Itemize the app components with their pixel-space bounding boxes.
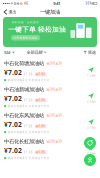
staticText: ¥7.88: [24, 99, 33, 102]
staticText: 1.2km: [87, 74, 95, 77]
staticText: ¥7.02: [4, 94, 22, 103]
staticText: 9:41: [53, 1, 60, 6]
staticText: 中石化长虹加油站: [4, 138, 44, 145]
staticText: 省0.86: [35, 98, 45, 102]
staticText: 立即查看附近油站: [14, 36, 38, 39]
staticText: 省0.86: [35, 72, 45, 76]
staticText: 全部品牌: [27, 50, 43, 55]
button[interactable]: 退出: [0, 7, 19, 17]
staticText: ¥7.88: [24, 151, 33, 154]
staticText: 3.1km: [87, 126, 95, 129]
button[interactable]: 中石化荷塘加油站: [0, 58, 100, 84]
staticText: 4G: [24, 2, 28, 5]
staticText: ¥7.88: [24, 125, 33, 128]
staticText: 满200减30: [46, 140, 62, 143]
staticText: 一键加油: [40, 9, 60, 15]
button[interactable]: 筛选: [83, 48, 96, 57]
staticText: 一键下单 轻松加油: [8, 25, 66, 34]
button[interactable]: 中石化东风加油站: [0, 110, 100, 136]
staticText: 2.6km: [87, 100, 95, 103]
staticText: 中国移动: [11, 2, 23, 5]
staticText: 最高可优惠4元·支持加油卡支付: [7, 130, 49, 134]
staticText: 满200减30: [46, 88, 62, 91]
staticText: 筛选: [88, 50, 96, 55]
button[interactable]: Refresh nearby stations: [84, 137, 96, 151]
staticText: 最高可优惠4元·支持加油卡支付: [7, 78, 49, 82]
staticText: 满200减30: [46, 62, 62, 65]
staticText: 退出: [8, 9, 16, 14]
staticText: 4.8km: [87, 152, 95, 155]
staticText: ¥7.02: [4, 68, 22, 77]
staticText: 最高可优惠4元·支持加油卡支付: [7, 104, 49, 108]
staticText: 省0.86: [35, 124, 45, 128]
staticText: 中石化东风加油站: [4, 112, 44, 119]
button[interactable]: 中石油新城加油站: [0, 84, 100, 110]
button[interactable]: Customer service: [84, 154, 96, 166]
staticText: 限时特惠 · 全国通用: [12, 20, 39, 24]
staticText: 满200减30: [46, 114, 62, 117]
staticText: 最高可优惠4元·支持加油卡支付: [7, 156, 49, 160]
button[interactable]: 92#: [4, 48, 15, 57]
staticText: 中石油新城加油站: [4, 86, 44, 93]
staticText: 中石化荷塘加油站: [4, 60, 44, 67]
staticText: 30%: [86, 2, 92, 5]
staticText: ¥7.02: [4, 146, 22, 155]
staticText: ¥7.02: [4, 120, 22, 129]
button[interactable]: 立即查看附近油站: [11, 35, 40, 40]
button[interactable]: 全部品牌: [27, 48, 47, 57]
staticText: 92#: [4, 50, 11, 55]
staticText: ¥7.88: [24, 73, 33, 76]
staticText: 省0.86: [35, 150, 45, 154]
button[interactable]: 中石化长虹加油站: [0, 136, 100, 162]
